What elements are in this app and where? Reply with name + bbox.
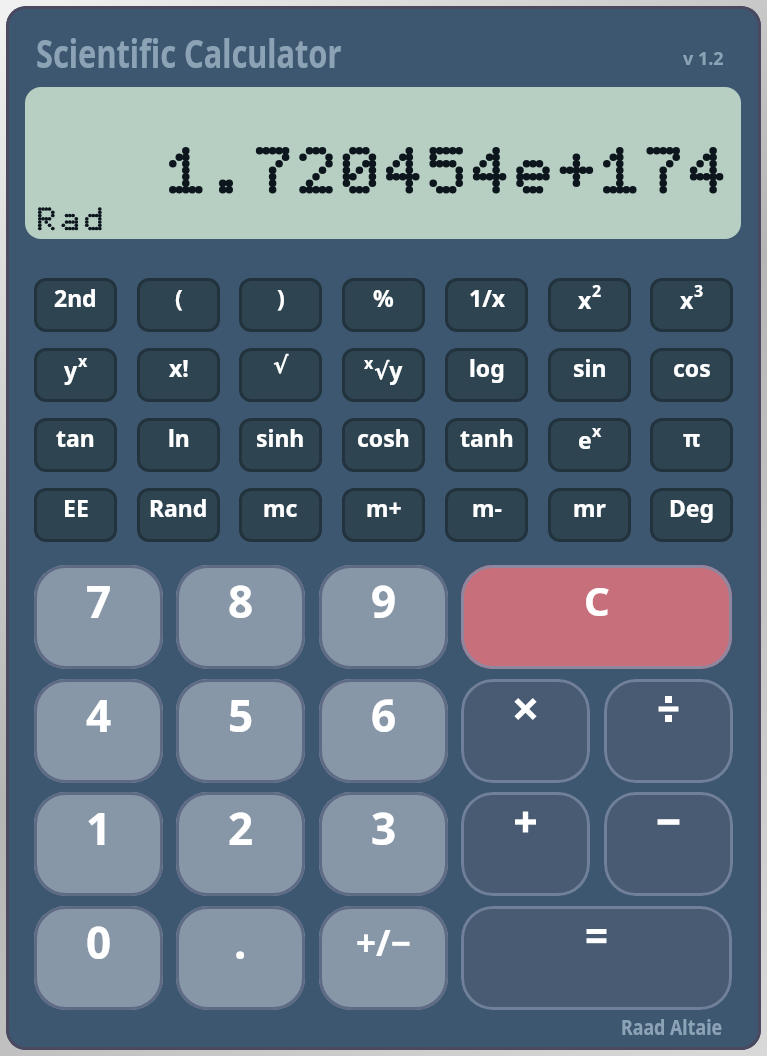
staticText: 2 — [228, 798, 254, 858]
staticText: . — [234, 912, 247, 972]
staticText: 6 — [371, 685, 397, 745]
button[interactable] — [604, 679, 733, 783]
staticText: % — [373, 282, 394, 313]
button[interactable]: 2nd — [34, 278, 117, 332]
button[interactable]: 7 — [34, 565, 163, 669]
button[interactable]: cosh — [342, 418, 425, 472]
button[interactable]: 2 — [176, 792, 305, 896]
staticText: x — [680, 284, 694, 315]
staticText: √ — [273, 352, 289, 379]
button[interactable] — [461, 906, 732, 1010]
staticText: 1/x — [469, 282, 505, 313]
staticText: cos — [673, 352, 711, 383]
button[interactable]: 3 — [319, 792, 448, 896]
button[interactable]: tanh — [445, 418, 528, 472]
staticText: 9 — [371, 571, 397, 631]
staticText: m+ — [366, 492, 402, 523]
staticText: 1 — [86, 798, 112, 858]
button[interactable]: tan — [34, 418, 117, 472]
button[interactable]: y — [34, 348, 117, 402]
button[interactable]: x — [548, 278, 631, 332]
staticText: mr — [573, 492, 606, 523]
button[interactable]: 9 — [319, 565, 448, 669]
staticText: x — [592, 420, 602, 442]
staticText: sinh — [256, 422, 305, 453]
button[interactable]: ( — [137, 278, 220, 332]
button[interactable]: mc — [239, 488, 322, 542]
button[interactable]: ln — [137, 418, 220, 472]
staticText: mc — [263, 492, 298, 523]
staticText: v 1.2 — [683, 46, 724, 71]
staticText: Rand — [149, 492, 208, 523]
button[interactable]: 5 — [176, 679, 305, 783]
staticText: ) — [277, 282, 285, 313]
staticText: x — [578, 284, 592, 315]
staticText: 2 — [592, 280, 602, 302]
button[interactable]: cos — [650, 348, 733, 402]
button[interactable]: . — [176, 906, 305, 1010]
staticText: m- — [472, 492, 502, 523]
staticText: 0 — [86, 912, 112, 972]
button[interactable]: 4 — [34, 679, 163, 783]
staticText: C — [584, 573, 610, 627]
button[interactable]: mr — [548, 488, 631, 542]
staticText: 7 — [86, 571, 112, 631]
staticText: cosh — [357, 422, 410, 453]
button[interactable]: e — [548, 418, 631, 472]
button[interactable]: sin — [548, 348, 631, 402]
staticText: x — [364, 352, 374, 374]
button[interactable]: 1/x — [445, 278, 528, 332]
staticText: EE — [63, 492, 89, 523]
staticText: 8 — [228, 571, 254, 631]
button[interactable]: Deg — [650, 488, 733, 542]
button[interactable]: C — [461, 565, 732, 669]
staticText: 2nd — [54, 282, 97, 313]
staticText: 5 — [228, 685, 254, 745]
button[interactable]: π — [650, 418, 733, 472]
button[interactable]: EE — [34, 488, 117, 542]
staticText: ln — [168, 422, 190, 453]
staticText: 4 — [86, 685, 112, 745]
button[interactable] — [461, 792, 590, 896]
button[interactable]: % — [342, 278, 425, 332]
staticText: ( — [175, 282, 183, 313]
button[interactable]: 0 — [34, 906, 163, 1010]
button[interactable] — [604, 792, 733, 896]
button[interactable]: x! — [137, 348, 220, 402]
staticText: π — [683, 422, 701, 453]
button[interactable]: 8 — [176, 565, 305, 669]
button[interactable]: 6 — [319, 679, 448, 783]
staticText: +/− — [356, 919, 411, 967]
staticText: Scientific Calculator — [36, 25, 342, 79]
staticText: tanh — [460, 422, 514, 453]
button[interactable]: Rand — [137, 488, 220, 542]
button[interactable]: ) — [239, 278, 322, 332]
staticText: y — [64, 354, 78, 385]
button[interactable]: sinh — [239, 418, 322, 472]
button[interactable] — [461, 679, 590, 783]
button[interactable]: m- — [445, 488, 528, 542]
staticText: x — [78, 350, 88, 372]
button[interactable]: log — [445, 348, 528, 402]
staticText: tan — [56, 422, 95, 453]
staticText: e — [578, 424, 592, 455]
staticText: Raad Altaie — [621, 1013, 722, 1042]
staticText: 3 — [694, 280, 704, 302]
staticText: Deg — [669, 492, 715, 523]
button[interactable]: x — [650, 278, 733, 332]
button[interactable]: m+ — [342, 488, 425, 542]
staticText: log — [469, 352, 505, 383]
staticText: x! — [169, 352, 189, 383]
staticText: sin — [573, 352, 607, 383]
button[interactable]: 1 — [34, 792, 163, 896]
button[interactable]: √ — [239, 348, 322, 402]
button[interactable]: x — [342, 348, 425, 402]
button[interactable]: +/− — [319, 906, 448, 1010]
staticText: 3 — [371, 798, 397, 858]
staticText: √y — [374, 354, 403, 385]
